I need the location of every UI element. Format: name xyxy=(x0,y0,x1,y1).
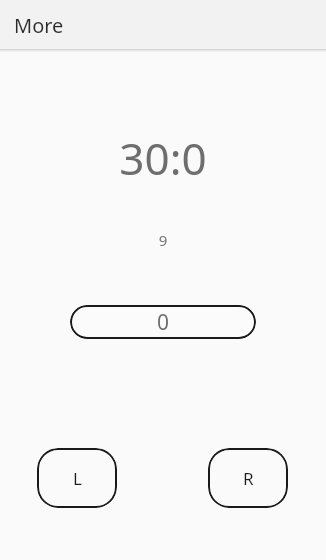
staticText: 30:0 xyxy=(0,128,326,188)
button[interactable]: 0 xyxy=(70,305,256,339)
staticText: R xyxy=(243,467,254,490)
staticText: L xyxy=(73,467,82,490)
button[interactable]: Right xyxy=(208,448,288,508)
staticText: 9 xyxy=(0,230,326,250)
staticText: 0 xyxy=(157,308,170,337)
staticText: More xyxy=(14,12,64,39)
button[interactable]: Left xyxy=(37,448,117,508)
